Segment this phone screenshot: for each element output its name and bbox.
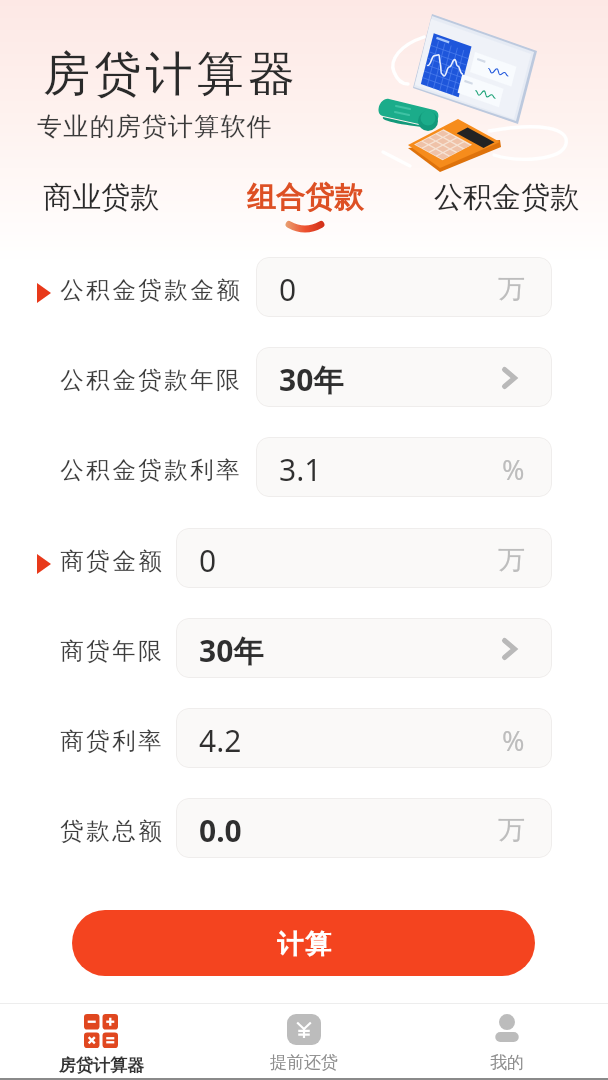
button[interactable]: 计算 <box>72 910 535 976</box>
staticText: 公积金贷款年限 <box>59 365 241 395</box>
staticText: 房贷计算器 <box>59 1055 144 1076</box>
button[interactable]: 3.1 <box>0 422 608 512</box>
button[interactable]: 公积金贷款 <box>418 179 594 216</box>
staticText: 公积金贷款利率 <box>59 455 241 485</box>
staticText: 30年 <box>279 359 344 400</box>
button[interactable]: 组合贷款 <box>231 179 378 233</box>
staticText: 0.0 <box>199 810 242 851</box>
staticText: % <box>502 722 525 759</box>
button[interactable]: 30年 <box>0 332 608 422</box>
staticText: 商贷年限 <box>59 636 163 666</box>
staticText: 房贷计算器 <box>41 45 297 104</box>
other: 提前还贷 <box>287 1014 321 1045</box>
staticText: 我的 <box>490 1052 524 1073</box>
staticText: % <box>502 451 525 488</box>
staticText: 商业贷款 <box>43 179 159 216</box>
staticText: 公积金贷款金额 <box>59 275 241 305</box>
button[interactable]: 我的 <box>405 1003 608 1080</box>
button[interactable]: 0 <box>0 513 608 603</box>
staticText: 提前还贷 <box>270 1052 338 1073</box>
staticText: 万 <box>498 543 525 577</box>
staticText: 万 <box>498 813 525 847</box>
staticText: 组合贷款 <box>247 179 363 216</box>
button[interactable]: 4.2 <box>0 693 608 783</box>
button[interactable]: 提前还贷 <box>202 1003 405 1080</box>
staticText: 30年 <box>199 630 264 671</box>
staticText: 商贷金额 <box>59 546 163 576</box>
button[interactable]: 商业贷款 <box>27 179 174 216</box>
button[interactable]: 30年 <box>0 603 608 693</box>
staticText: 3.1 <box>279 449 322 490</box>
staticText: 商贷利率 <box>59 726 163 756</box>
staticText: 专业的房贷计算软件 <box>37 111 273 142</box>
staticText: 贷款总额 <box>59 816 163 846</box>
staticText: 4.2 <box>199 720 242 761</box>
other: 我的 <box>490 1014 524 1045</box>
staticText: 计算 <box>276 928 332 961</box>
staticText: 0 <box>279 269 297 310</box>
button[interactable]: 房贷计算器 <box>0 1003 202 1080</box>
button[interactable]: 0.0 <box>0 783 608 873</box>
button[interactable]: 0 <box>0 242 608 332</box>
staticText: 公积金贷款 <box>434 179 579 216</box>
staticText: 万 <box>498 272 525 306</box>
staticText: 0 <box>199 540 217 581</box>
other: 房贷计算器 <box>84 1014 118 1048</box>
